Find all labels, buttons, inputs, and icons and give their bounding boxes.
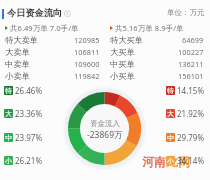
staticText: 特大卖单 (5, 35, 38, 45)
staticText: 特 (167, 87, 174, 95)
staticText: 特大买单 (110, 35, 143, 45)
staticText: -23869万 (87, 129, 123, 141)
staticText: 小 (167, 157, 174, 165)
button[interactable]: 大 (166, 108, 205, 119)
staticText: 136211 (178, 59, 204, 69)
staticText: 34.14% (177, 155, 205, 166)
staticText: 26.21% (15, 155, 43, 166)
staticText: 中 (5, 134, 12, 142)
staticText: 100227 (178, 47, 204, 57)
staticText: 120985 (74, 35, 100, 45)
staticText: 共6.49万单 7.0手/单 (10, 23, 79, 33)
button[interactable]: 特 (166, 85, 205, 96)
staticText: 今日资金流向 (7, 7, 63, 19)
staticText: 106811 (74, 47, 100, 57)
staticText: 特 (5, 87, 12, 95)
staticText: 大 (167, 110, 174, 118)
staticText: 大买单 (110, 47, 135, 57)
staticText: 29.79% (177, 132, 205, 143)
staticText: 资金流入 (90, 119, 120, 128)
staticText: 共5.16万单 8.9手/单 (115, 23, 184, 33)
staticText: 龙网 (166, 154, 190, 169)
staticText: 大 (5, 110, 12, 118)
staticText: 23.36% (15, 108, 43, 119)
staticText: 中卖单 (5, 59, 30, 69)
staticText: 156101 (178, 71, 204, 81)
button[interactable]: 小 (4, 155, 43, 166)
button[interactable]: 中 (4, 132, 43, 143)
button[interactable]: 小 (166, 155, 205, 166)
button[interactable]: 说明 (64, 10, 71, 17)
staticText: 中 (167, 134, 174, 142)
staticText: 64699 (182, 35, 204, 45)
staticText: 小买单 (110, 71, 135, 81)
staticText: 单位：万元 (167, 8, 205, 17)
button[interactable]: 大 (4, 108, 43, 119)
staticText: 109600 (74, 59, 100, 69)
staticText: 小卖单 (5, 71, 30, 81)
staticText: 河南 (142, 154, 166, 169)
staticText: 中买单 (110, 59, 135, 69)
staticText: 26.46% (15, 85, 43, 96)
staticText: 小 (5, 157, 12, 165)
staticText: 14.15% (177, 85, 205, 96)
staticText: 21.92% (177, 108, 205, 119)
staticText: 23.97% (15, 132, 43, 143)
staticText: 119842 (74, 71, 100, 81)
button[interactable]: 特 (4, 85, 43, 96)
staticText: 大卖单 (5, 47, 30, 57)
button[interactable]: 中 (166, 132, 205, 143)
